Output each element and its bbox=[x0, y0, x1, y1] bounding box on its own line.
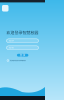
staticText: 请输入密码 bbox=[9, 47, 14, 48]
button[interactable]: 登录 bbox=[17, 54, 28, 57]
staticText: 登录 bbox=[20, 54, 26, 57]
staticText: 我已阅读并同意用户协议和隐私政策 bbox=[10, 60, 26, 61]
staticText: 欢迎登录智慧校园 bbox=[6, 30, 38, 35]
staticText: 请输入账号 bbox=[9, 40, 14, 41]
